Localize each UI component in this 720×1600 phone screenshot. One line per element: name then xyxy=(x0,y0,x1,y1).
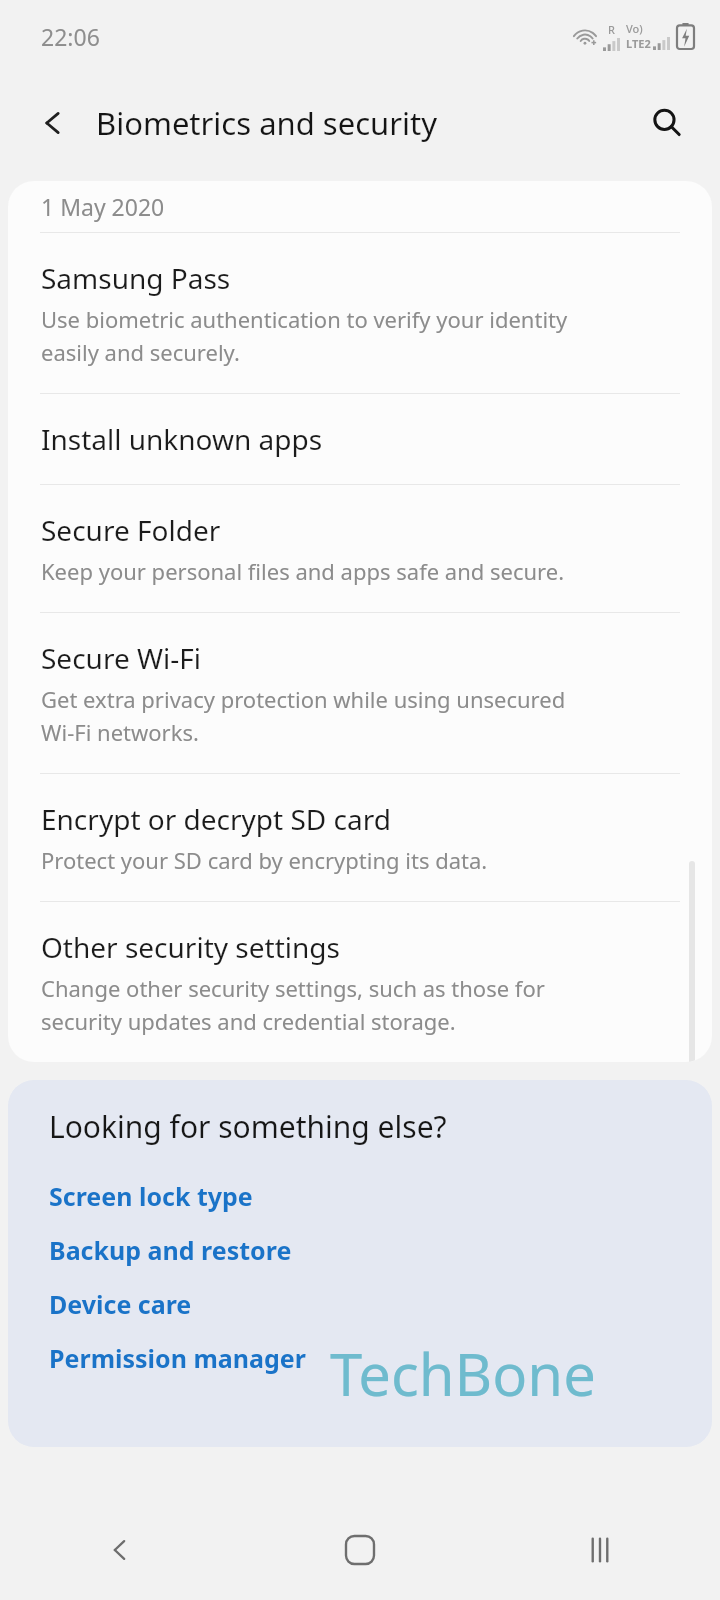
button[interactable]: Install unknown apps xyxy=(8,394,712,484)
staticText: 1 May 2020 xyxy=(41,191,165,222)
staticText: Secure Wi-Fi xyxy=(41,639,202,677)
button[interactable]: Device care xyxy=(8,1277,712,1331)
button[interactable]: Samsung Pass xyxy=(8,233,712,393)
button[interactable]: Backup and restore xyxy=(8,1223,712,1277)
staticText: LTE2 xyxy=(626,36,651,51)
button[interactable]: Screen lock type xyxy=(8,1169,712,1223)
staticText: Samsung Pass xyxy=(41,259,231,297)
staticText: Protect your SD card by encrypting its d… xyxy=(41,845,488,875)
staticText: Other security settings xyxy=(41,928,340,966)
button[interactable]: Permission manager xyxy=(8,1331,712,1385)
staticText: security updates and credential storage. xyxy=(41,1006,456,1036)
button[interactable]: Search xyxy=(636,92,698,154)
button[interactable]: Encrypt or decrypt SD card xyxy=(8,774,712,901)
button[interactable]: Other security settings xyxy=(8,902,712,1062)
staticText: Biometrics and security xyxy=(96,102,437,144)
button[interactable]: Secure Wi-Fi xyxy=(8,613,712,773)
staticText: Encrypt or decrypt SD card xyxy=(41,800,391,838)
staticText: Keep your personal files and apps safe a… xyxy=(41,556,565,586)
staticText: Wi-Fi networks. xyxy=(41,717,199,747)
button[interactable]: Secure Folder xyxy=(8,485,712,612)
staticText: Screen lock type xyxy=(49,1179,253,1213)
staticText: Backup and restore xyxy=(49,1233,292,1267)
staticText: Get extra privacy protection while using… xyxy=(41,684,566,714)
staticText: R xyxy=(608,22,615,37)
button[interactable]: Back xyxy=(22,92,84,154)
button[interactable]: Home xyxy=(324,1514,396,1586)
staticText: Use biometric authentication to verify y… xyxy=(41,304,568,334)
button[interactable]: Recent apps xyxy=(564,1514,636,1586)
staticText: Install unknown apps xyxy=(41,420,323,458)
staticText: Vo) xyxy=(626,21,643,36)
staticText: easily and securely. xyxy=(41,337,240,367)
staticText: Device care xyxy=(49,1287,192,1321)
staticText: Permission manager xyxy=(49,1341,306,1375)
staticText: TechBone xyxy=(330,1334,596,1413)
staticText: 22:06 xyxy=(41,21,100,52)
staticText: Looking for something else? xyxy=(49,1106,447,1147)
staticText: Change other security settings, such as … xyxy=(41,973,545,1003)
button[interactable]: Back xyxy=(84,1514,156,1586)
staticText: Secure Folder xyxy=(41,511,221,549)
